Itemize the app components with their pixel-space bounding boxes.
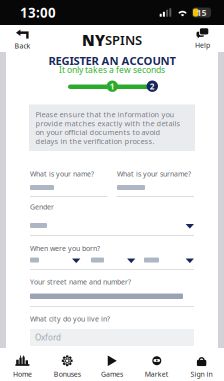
button[interactable]: Bonuses [45,348,90,381]
staticText: SPINS [105,31,142,49]
staticText: provide matches exactly with the details [35,118,180,128]
staticText: Games [101,369,123,379]
button[interactable]: Home [0,348,45,381]
staticText: 2 [150,81,155,92]
staticText: What city do you live in? [30,314,110,323]
staticText: 13:00 [20,3,56,22]
button[interactable]: Sign in [179,348,224,381]
button[interactable]: NY [52,31,172,49]
staticText: Market [145,369,169,379]
staticText: What is your name? [30,169,94,178]
staticText: NY [82,30,105,50]
staticText: What is your surname? [117,169,191,178]
staticText: 15 [196,6,206,18]
button[interactable]: Market [134,348,179,381]
staticText: on your official documents to avoid [35,127,160,137]
staticText: Bonuses [54,369,81,379]
staticText: When were you born? [30,243,100,253]
staticText: Back [14,41,30,50]
staticText: It only takes a few seconds [59,64,165,76]
button[interactable]: Games [90,348,134,381]
staticText: 1 [110,81,115,92]
staticText: delays in the verification process. [35,136,154,146]
button[interactable]: Back [2,29,42,50]
staticText: Home [13,369,32,379]
button[interactable]: Help [182,28,222,49]
staticText: Your street name and number? [30,277,131,286]
staticText: Help [195,40,210,50]
staticText: Oxford [35,332,61,343]
staticText: REGISTER AN ACCOUNT [48,53,175,68]
staticText: Please ensure that the information you [35,109,174,119]
staticText: Sign in [191,369,213,379]
staticText: Gender [30,202,54,211]
